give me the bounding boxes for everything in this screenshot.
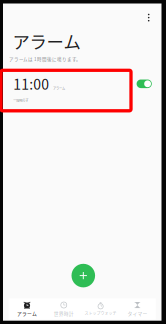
button[interactable]: 世界時計 xyxy=(45,298,82,319)
staticText: アラーム xyxy=(53,86,65,91)
button[interactable]: タイマー xyxy=(119,298,156,319)
staticText: 世界時計 xyxy=(54,310,74,317)
staticText: アラーム xyxy=(17,310,37,317)
button[interactable]: ストップウォッチ xyxy=(82,298,119,319)
staticText: ストップウォッチ xyxy=(85,310,117,316)
button[interactable]: Alarm enabled xyxy=(137,79,152,88)
staticText: アラームは 1時間後に鳴ります。 xyxy=(9,56,81,62)
button[interactable]: More options xyxy=(140,9,158,27)
staticText: アラーム xyxy=(13,28,81,53)
staticText: タイマー xyxy=(127,310,147,317)
button[interactable]: 11:00 xyxy=(3,70,131,107)
button[interactable]: アラーム xyxy=(9,298,45,319)
staticText: 一度鳴らす xyxy=(13,98,28,103)
staticText: 11:00 xyxy=(13,73,49,94)
button[interactable]: Add alarm xyxy=(71,264,95,287)
